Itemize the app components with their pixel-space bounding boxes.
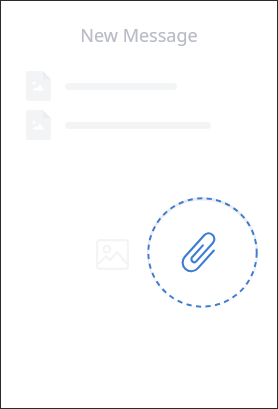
button[interactable]: Attach file xyxy=(147,197,258,308)
staticText: New Message xyxy=(80,23,198,48)
